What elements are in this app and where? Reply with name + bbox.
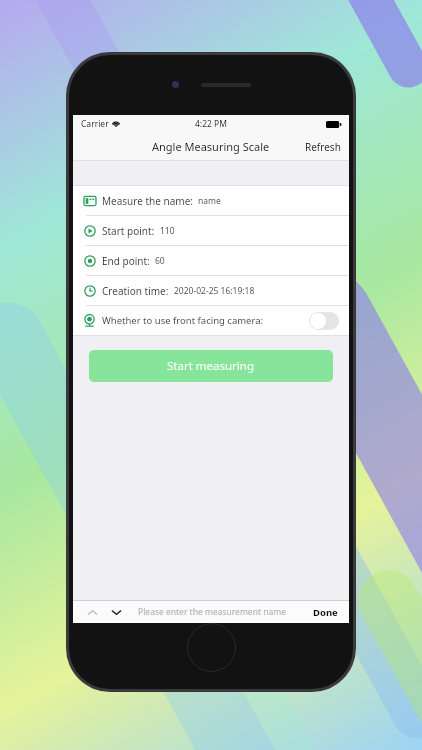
staticText: Please enter the measurement name bbox=[138, 606, 286, 618]
button[interactable]: Whether to use front facing camera: bbox=[73, 306, 349, 335]
button[interactable]: Measure the name: bbox=[73, 186, 349, 215]
button[interactable]: Done bbox=[307, 603, 344, 622]
button[interactable]: Creation time: bbox=[73, 276, 349, 305]
button[interactable]: Refresh bbox=[297, 136, 349, 158]
staticText: Whether to use front facing camera: bbox=[102, 314, 264, 327]
staticText: Start point: bbox=[102, 224, 155, 238]
staticText: Measure the name: bbox=[102, 194, 193, 208]
staticText: Refresh bbox=[305, 140, 341, 154]
button[interactable]: Use front facing camera toggle bbox=[309, 312, 339, 330]
staticText: Carrier bbox=[81, 118, 109, 130]
staticText: 60 bbox=[155, 255, 165, 267]
staticText: Angle Measuring Scale bbox=[152, 139, 270, 154]
button[interactable]: Start point: bbox=[73, 216, 349, 245]
button[interactable]: Start measuring bbox=[89, 350, 333, 382]
staticText: Done bbox=[313, 606, 338, 619]
staticText: 4:22 PM bbox=[195, 118, 227, 130]
staticText: Start measuring bbox=[167, 358, 255, 374]
staticText: name bbox=[198, 195, 221, 207]
staticText: 2020-02-25 16:19:18 bbox=[174, 285, 255, 297]
button[interactable]: Previous field bbox=[84, 604, 100, 620]
staticText: End point: bbox=[102, 254, 150, 268]
staticText: 110 bbox=[160, 225, 175, 237]
staticText: Creation time: bbox=[102, 284, 169, 298]
button[interactable]: End point: bbox=[73, 246, 349, 275]
button[interactable]: Next field bbox=[108, 604, 124, 620]
